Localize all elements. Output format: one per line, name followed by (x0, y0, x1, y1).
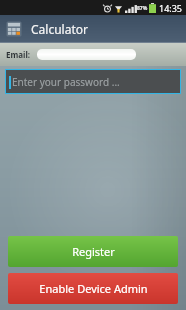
staticText: Calculator (31, 21, 88, 37)
button[interactable]: Enter your password ... (5, 69, 181, 94)
other: Calculator app icon (5, 20, 23, 38)
staticText: Email: (6, 49, 31, 60)
button[interactable]: Enable Device Admin (8, 273, 178, 304)
staticText: Enter your password ... (12, 75, 120, 89)
staticText: Register (72, 244, 115, 259)
button[interactable]: Register (8, 236, 178, 267)
staticText: 14:35 (159, 2, 183, 14)
staticText: Enable Device Admin (39, 281, 148, 296)
staticText: 87% (137, 5, 148, 12)
